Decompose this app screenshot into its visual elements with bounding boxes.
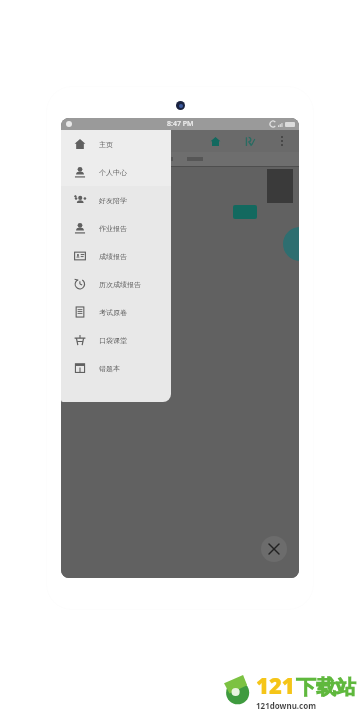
button[interactable]: 错题本 xyxy=(61,354,171,382)
staticText: 好友陪学 xyxy=(99,196,127,205)
button[interactable]: 个人中心 xyxy=(61,158,171,186)
staticText: 口袋课堂 xyxy=(99,336,127,345)
staticText: 考试原卷 xyxy=(99,308,127,317)
button[interactable]: 主页 xyxy=(61,130,171,158)
staticText: 成绩报告 xyxy=(99,252,127,261)
button[interactable]: 作业报告 xyxy=(61,214,171,242)
button[interactable] xyxy=(157,157,173,161)
button[interactable]: 历次成绩报告 xyxy=(61,270,171,298)
staticText: 121downu.com xyxy=(256,700,317,711)
button[interactable]: 好友陪学 xyxy=(61,186,171,214)
staticText: 121 xyxy=(256,670,295,700)
staticText: 个人中心 xyxy=(99,168,127,177)
button[interactable]: Home xyxy=(207,133,223,149)
button[interactable]: 口袋课堂 xyxy=(61,326,171,354)
button[interactable]: Close xyxy=(261,536,287,562)
staticText: 错题本 xyxy=(99,364,120,373)
button[interactable]: 成绩报告 xyxy=(61,242,171,270)
button[interactable] xyxy=(233,205,257,219)
staticText: 主页 xyxy=(99,140,113,149)
staticText: 下载站 xyxy=(296,675,356,700)
button[interactable]: 考试原卷 xyxy=(61,298,171,326)
button[interactable]: Record xyxy=(241,133,257,149)
staticText: 历次成绩报告 xyxy=(99,280,141,289)
staticText: 作业报告 xyxy=(99,224,127,233)
button[interactable]: More options xyxy=(275,134,289,148)
staticText: 8:47 PM xyxy=(167,119,194,129)
